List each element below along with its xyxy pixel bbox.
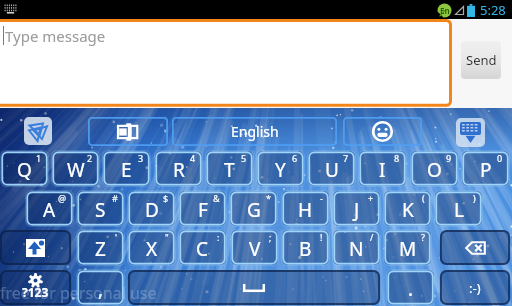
button[interactable]: Emoticon [440, 270, 510, 305]
staticText: F [198, 197, 208, 223]
staticText: * [266, 192, 271, 204]
staticText: # [112, 192, 118, 204]
button[interactable]: R [155, 151, 202, 186]
staticText: 8 [394, 152, 400, 164]
staticText: 5 [241, 152, 247, 164]
button[interactable]: Shift [0, 230, 71, 265]
button[interactable]: W [52, 151, 99, 186]
button[interactable]: G [230, 191, 277, 226]
staticText: ?123 [22, 284, 49, 300]
staticText: U [325, 157, 339, 183]
button[interactable]: K [384, 191, 431, 226]
staticText: ? [421, 231, 425, 243]
button[interactable]: Q [1, 151, 48, 186]
staticText: J [354, 197, 360, 223]
button[interactable]: V [231, 230, 278, 265]
staticText: ) [473, 192, 476, 204]
button[interactable]: Backspace [440, 230, 510, 265]
button[interactable]: L [435, 191, 482, 226]
staticText: 5:28 [480, 1, 506, 19]
button[interactable]: I [359, 151, 406, 186]
staticText: :-) [469, 279, 481, 297]
staticText: & [213, 192, 220, 204]
staticText: 3 [138, 152, 144, 164]
staticText: 7 [343, 152, 349, 164]
button[interactable]: Send [461, 41, 501, 79]
staticText: free for personal use [0, 282, 157, 304]
staticText: X [146, 236, 158, 262]
button[interactable]: . [387, 270, 434, 305]
staticText: V [249, 236, 261, 262]
staticText: C [196, 236, 209, 262]
staticText: A [43, 197, 56, 223]
staticText: Type message [5, 26, 106, 46]
staticText: 9 [446, 152, 452, 164]
staticText: . [408, 276, 414, 302]
button[interactable]: N [333, 230, 380, 265]
staticText: @ [58, 192, 67, 204]
button[interactable]: E [103, 151, 150, 186]
button[interactable]: F [179, 191, 226, 226]
button[interactable]: Z [77, 230, 124, 265]
staticText: Q [17, 157, 32, 183]
staticText: ! [320, 231, 323, 243]
button[interactable]: C [179, 230, 226, 265]
button[interactable]: X [128, 230, 175, 265]
button[interactable]: , [77, 270, 124, 305]
staticText: S [95, 197, 106, 223]
staticText: - [320, 192, 323, 204]
button[interactable]: Space [128, 270, 380, 305]
staticText: + [368, 192, 374, 204]
staticText: 1 [36, 152, 42, 164]
button[interactable]: J [333, 191, 380, 226]
staticText: B [299, 236, 312, 262]
staticText: $ [163, 192, 169, 204]
button[interactable]: T [206, 151, 253, 186]
button[interactable]: O [411, 151, 458, 186]
staticText: T [224, 157, 235, 183]
staticText: O [427, 157, 442, 183]
staticText: M [399, 236, 417, 262]
button[interactable]: Emoji [343, 117, 422, 146]
button[interactable]: English [172, 117, 337, 146]
button[interactable]: Y [257, 151, 304, 186]
button[interactable]: Sound [24, 117, 52, 145]
staticText: 4 [190, 152, 196, 164]
staticText: 0 [497, 152, 503, 164]
button[interactable]: H [282, 191, 329, 226]
staticText: R [173, 157, 185, 183]
staticText: D [145, 197, 159, 223]
button[interactable]: P [462, 151, 509, 186]
staticText: E [121, 157, 132, 183]
staticText: Z [95, 236, 106, 262]
staticText: I [379, 157, 386, 183]
staticText: Send [466, 51, 497, 69]
staticText: " [165, 231, 169, 243]
staticText: Y [275, 157, 286, 183]
staticText: 6 [292, 152, 298, 164]
staticText: ' [115, 231, 118, 243]
staticText: ( [422, 192, 425, 204]
staticText: K [402, 197, 414, 223]
staticText: 2 [87, 152, 93, 164]
staticText: G [247, 197, 261, 223]
staticText: , [98, 276, 104, 302]
staticText: En [440, 5, 450, 16]
button[interactable]: U [308, 151, 355, 186]
button[interactable]: Hide keyboard [456, 118, 485, 147]
button[interactable]: Layout [88, 117, 168, 146]
button[interactable]: Type message [0, 19, 452, 107]
staticText: P [480, 157, 492, 183]
staticText: English [231, 122, 279, 141]
button[interactable]: D [128, 191, 175, 226]
button[interactable]: A [26, 191, 73, 226]
button[interactable]: S [77, 191, 124, 226]
button[interactable]: B [282, 230, 329, 265]
button[interactable]: M [384, 230, 431, 265]
staticText: ; [269, 231, 272, 243]
staticText: W [67, 157, 85, 183]
button[interactable]: Symbols [0, 270, 71, 305]
staticText: / [370, 231, 374, 243]
staticText: : [217, 231, 220, 243]
staticText: H [298, 197, 313, 223]
